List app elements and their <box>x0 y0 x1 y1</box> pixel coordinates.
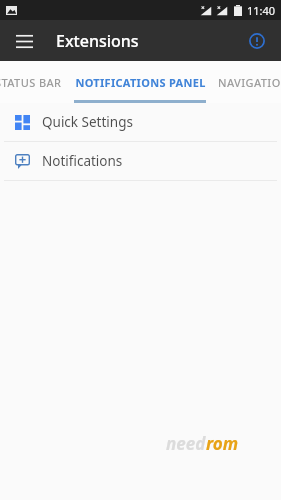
staticText: 11:40 <box>247 3 276 18</box>
button[interactable]: NAVIGATION BAR <box>206 61 281 103</box>
staticText: NOTIFICATIONS PANEL <box>75 75 206 90</box>
button[interactable]: STATUS BAR <box>0 61 74 103</box>
staticText: NAVIGATION BAR <box>218 75 281 90</box>
staticText: Extensions <box>56 30 139 52</box>
staticText: Notifications <box>42 152 123 170</box>
button[interactable]: Quick Settings <box>0 103 281 141</box>
staticText: need <box>166 432 206 455</box>
staticText: rom <box>206 432 239 455</box>
button[interactable]: Information <box>241 25 273 57</box>
button[interactable]: Open navigation menu <box>8 25 40 57</box>
button[interactable]: NOTIFICATIONS PANEL <box>74 61 206 103</box>
staticText: Quick Settings <box>42 113 133 131</box>
button[interactable]: Notifications <box>0 142 281 180</box>
staticText: STATUS BAR <box>0 75 62 90</box>
